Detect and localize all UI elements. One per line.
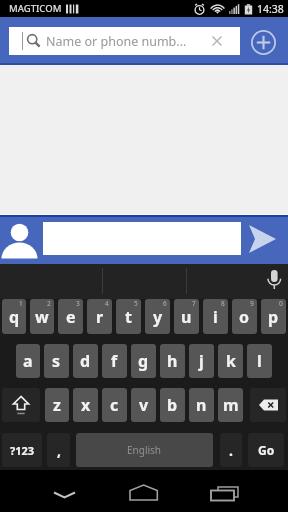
button[interactable]: u	[174, 299, 199, 334]
button[interactable]: y	[145, 299, 170, 334]
staticText: z	[53, 394, 61, 416]
staticText: q	[9, 306, 20, 328]
staticText: j	[199, 350, 204, 372]
staticText: f	[111, 350, 118, 372]
button[interactable]: h	[160, 344, 185, 378]
button[interactable]: r	[87, 299, 112, 334]
button[interactable]: d	[73, 344, 98, 378]
button[interactable]: Name or phone numb...	[9, 27, 240, 55]
button[interactable]: English	[76, 433, 213, 467]
staticText: k	[226, 350, 236, 372]
staticText: MAGTICOM	[9, 2, 62, 15]
button[interactable]: z	[45, 388, 69, 422]
button[interactable]: v	[131, 388, 156, 422]
button[interactable]	[204, 477, 240, 505]
staticText: ,	[57, 441, 61, 460]
button[interactable]: m	[218, 388, 243, 422]
button[interactable]: w	[30, 299, 54, 334]
button[interactable]: ,	[47, 433, 70, 467]
staticText: ?123	[10, 443, 35, 458]
staticText: 7	[192, 299, 196, 308]
staticText: 6	[163, 299, 167, 308]
button[interactable]: f	[102, 344, 127, 378]
button[interactable]: k	[218, 344, 243, 378]
button[interactable]: c	[102, 388, 127, 422]
button[interactable]: n	[189, 388, 214, 422]
button[interactable]	[250, 388, 286, 422]
staticText: .	[229, 441, 233, 460]
staticText: 0	[279, 299, 283, 308]
button[interactable]	[126, 477, 162, 505]
button[interactable]: o	[232, 299, 257, 334]
button[interactable]: t	[116, 299, 141, 334]
button[interactable]: Go	[248, 433, 284, 467]
staticText: w	[35, 306, 49, 328]
staticText: n	[196, 394, 207, 416]
staticText: English	[127, 443, 162, 457]
staticText: b	[167, 394, 178, 416]
staticText: m	[223, 394, 239, 416]
staticText: d	[80, 350, 91, 372]
button[interactable]	[47, 477, 83, 505]
button[interactable]: .	[220, 433, 242, 467]
staticText: o	[239, 306, 250, 328]
staticText: h	[167, 350, 178, 372]
button[interactable]	[246, 224, 280, 256]
staticText: s	[52, 350, 61, 372]
staticText: a	[23, 350, 33, 372]
staticText: 14:38	[257, 2, 284, 16]
staticText: l	[257, 350, 262, 372]
staticText: x	[81, 394, 91, 416]
staticText: 5	[134, 299, 138, 308]
button[interactable]: p	[261, 299, 286, 334]
button[interactable]: b	[160, 388, 185, 422]
staticText: u	[181, 306, 192, 328]
button[interactable]: g	[131, 344, 156, 378]
button[interactable]: x	[73, 388, 98, 422]
button[interactable]: e	[58, 299, 83, 334]
staticText: Go	[258, 442, 275, 458]
staticText: 2	[47, 299, 51, 308]
button[interactable]: ?123	[2, 433, 42, 467]
staticText: c	[110, 394, 119, 416]
button[interactable]	[2, 388, 40, 422]
staticText: 4	[105, 299, 109, 308]
button[interactable]: j	[189, 344, 214, 378]
staticText: y	[153, 306, 163, 328]
staticText: g	[138, 350, 149, 372]
staticText: v	[139, 394, 149, 416]
staticText: p	[268, 306, 279, 328]
button[interactable]: a	[16, 344, 40, 378]
staticText: i	[213, 306, 218, 328]
button[interactable]: l	[247, 344, 272, 378]
staticText: Name or phone numb...	[46, 33, 187, 50]
button[interactable]: q	[2, 299, 26, 334]
button[interactable]	[260, 266, 288, 297]
staticText: r	[96, 306, 104, 328]
button[interactable]: s	[44, 344, 69, 378]
staticText: t	[125, 306, 132, 328]
staticText: 8	[221, 299, 225, 308]
staticText: 1	[19, 299, 23, 308]
staticText: e	[66, 306, 76, 328]
staticText: 3	[76, 299, 80, 308]
button[interactable]: i	[203, 299, 228, 334]
button[interactable]	[249, 28, 278, 57]
staticText: 9	[250, 299, 254, 308]
